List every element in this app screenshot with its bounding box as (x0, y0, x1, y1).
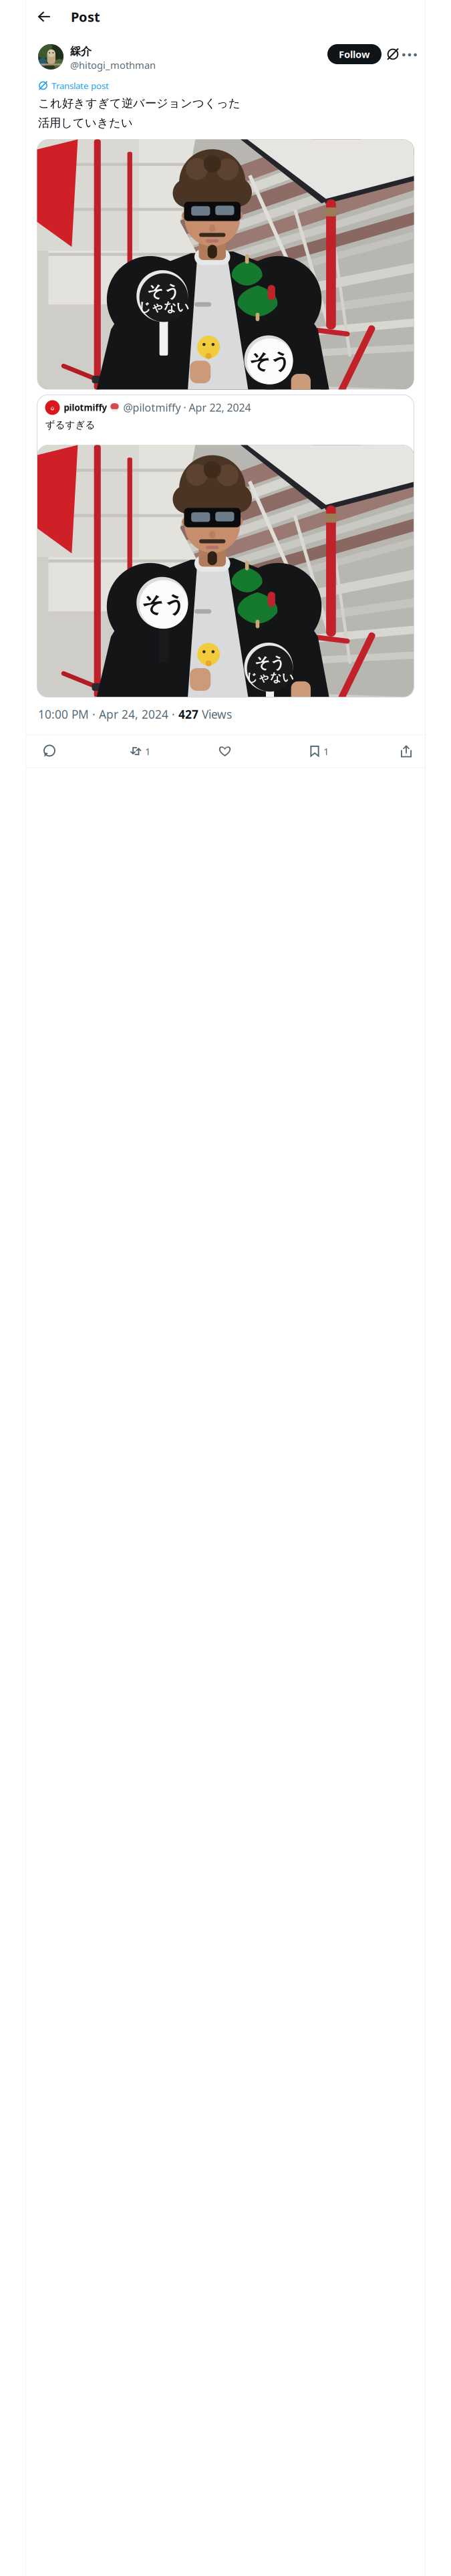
staticText: Post (71, 8, 100, 26)
staticText: そう (142, 591, 186, 618)
staticText: ずるすぎる (45, 419, 95, 431)
button[interactable]: pilotmiffy (37, 395, 414, 697)
button[interactable]: Back (32, 0, 56, 34)
button[interactable]: Bookmark (309, 735, 400, 767)
staticText: 10:00 PM · Apr 24, 2024 · (38, 706, 178, 722)
staticText: Follow (339, 48, 370, 61)
staticText: @pilotmiffy · Apr 22, 2024 (123, 400, 251, 415)
staticText: そう (147, 282, 180, 301)
staticText: これ好きすぎて逆バージョンつくった (38, 96, 241, 110)
staticText: @hitogi_mothman (70, 59, 156, 72)
staticText: 活用していきたい (38, 116, 133, 130)
button[interactable]: Like (218, 735, 309, 767)
staticText: 427 (178, 706, 198, 722)
button[interactable]: Repost (130, 735, 218, 767)
staticText: Views (198, 706, 232, 722)
button[interactable]: More (402, 44, 418, 63)
staticText: そう (249, 349, 291, 374)
button[interactable]: Follow (327, 44, 382, 64)
button[interactable]: Share (400, 735, 417, 767)
staticText: 1 (145, 745, 150, 758)
button[interactable]: Reply (43, 735, 130, 767)
staticText: pilotmiffy (64, 402, 107, 413)
staticText: じゃない (138, 299, 189, 315)
staticText: じゃない (246, 670, 294, 685)
staticText: そう (255, 654, 285, 672)
button[interactable]: Grok (382, 44, 402, 61)
button[interactable]: Translate post (26, 72, 425, 91)
staticText: Translate post (51, 80, 109, 91)
staticText: 1 (323, 745, 329, 758)
staticText: 綵介 (70, 45, 92, 58)
